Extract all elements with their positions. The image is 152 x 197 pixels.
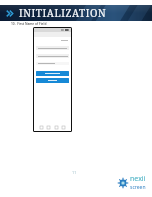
button[interactable] <box>36 54 69 58</box>
button[interactable]: Nav item 4 <box>61 125 66 130</box>
staticText: INITIALIZATION <box>19 6 107 20</box>
button[interactable]: Nav item 3 <box>54 125 59 130</box>
button[interactable]: Nav item 1 <box>39 125 44 130</box>
button[interactable]: Nav item 1 <box>34 28 71 131</box>
button[interactable]: Nav item 2 <box>46 125 51 130</box>
button[interactable] <box>36 78 69 83</box>
staticText: 10. First Name of Field <box>11 22 47 26</box>
staticText: nexii <box>130 174 146 184</box>
button[interactable] <box>36 71 69 76</box>
staticText: 11 <box>72 170 77 175</box>
button[interactable] <box>36 62 69 65</box>
button[interactable] <box>36 46 69 50</box>
staticText: screen <box>130 184 146 191</box>
button[interactable]: Nexii Screen logo <box>118 174 146 191</box>
